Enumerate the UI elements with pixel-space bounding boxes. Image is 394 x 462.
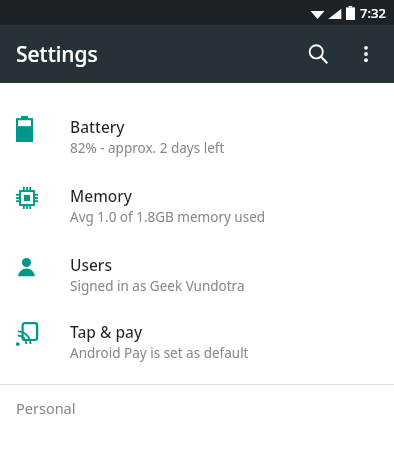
staticText: Android Pay is set as default — [70, 344, 249, 362]
button[interactable]: More options — [342, 30, 390, 78]
staticText: 82% - approx. 2 days left — [70, 139, 225, 157]
button[interactable]: Memory — [0, 157, 394, 226]
staticText: 7:32 — [360, 4, 386, 22]
button[interactable]: Tap & pay — [0, 295, 394, 362]
staticText: Users — [70, 254, 112, 275]
button[interactable]: Battery — [0, 88, 394, 157]
staticText: Memory — [70, 185, 133, 206]
button[interactable]: Search — [294, 30, 342, 78]
button[interactable]: Users — [0, 226, 394, 295]
staticText: Tap & pay — [70, 321, 143, 342]
staticText: Battery — [70, 116, 125, 137]
staticText: Signed in as Geek Vundotra — [70, 277, 245, 295]
staticText: Settings — [16, 40, 98, 69]
staticText: Personal — [16, 398, 76, 418]
staticText: Avg 1.0 of 1.8GB memory used — [70, 208, 266, 226]
